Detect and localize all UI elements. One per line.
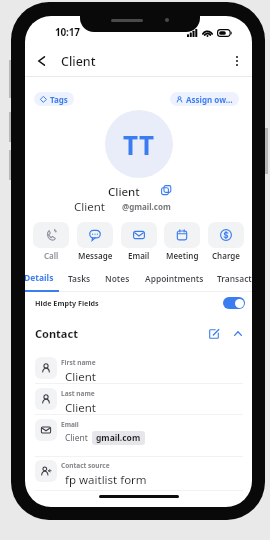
staticText: 10:17	[55, 25, 80, 39]
button[interactable]: First name	[25, 351, 252, 384]
staticText: TT	[123, 127, 155, 162]
button[interactable]: Charge	[208, 222, 244, 261]
staticText: fp waitlist form	[65, 472, 147, 488]
button[interactable]: Transacti	[217, 273, 252, 284]
button[interactable]: Last name	[25, 384, 252, 415]
staticText: Client	[65, 432, 88, 444]
staticText: @gmail.com	[122, 201, 171, 212]
staticText: Email	[128, 250, 150, 261]
staticText: Charge	[212, 250, 240, 261]
staticText: gmail.com	[96, 432, 141, 444]
button[interactable]: Tasks	[68, 273, 91, 284]
staticText: Message	[78, 250, 113, 261]
button[interactable]: Notes	[105, 273, 130, 284]
staticText: Appointments	[145, 273, 204, 284]
button[interactable]: Details	[25, 272, 54, 284]
button[interactable]: Message	[77, 222, 113, 261]
button[interactable]: Assign ow…	[170, 92, 239, 106]
button[interactable]: Meeting	[164, 222, 200, 261]
staticText: Meeting	[166, 250, 199, 261]
staticText: Client	[65, 369, 96, 385]
staticText: Client	[61, 53, 96, 70]
staticText: Client	[74, 199, 105, 215]
staticText: Contact	[35, 326, 78, 341]
staticText: Contact source	[61, 461, 110, 470]
staticText: Client	[65, 400, 96, 416]
button[interactable]: Collapse	[231, 327, 244, 340]
button[interactable]: Email	[25, 415, 252, 457]
staticText: First name	[61, 358, 96, 367]
staticText: Last name	[61, 389, 95, 398]
button[interactable]: Appointments	[145, 273, 204, 284]
button[interactable]: Tags	[34, 92, 74, 106]
staticText: Email	[61, 420, 79, 429]
button[interactable]: Hide empty fields	[223, 297, 245, 309]
button[interactable]: Call	[33, 222, 69, 261]
staticText: Tags	[50, 94, 68, 105]
staticText: Transacti	[217, 273, 252, 284]
button[interactable]: More options	[228, 52, 246, 70]
button[interactable]: Email	[121, 222, 157, 261]
staticText: Call	[44, 250, 59, 261]
staticText: Notes	[105, 273, 130, 284]
button[interactable]: Copy	[159, 183, 173, 197]
staticText: Client	[108, 184, 140, 200]
staticText: Tasks	[68, 273, 91, 284]
button[interactable]: Contact source	[25, 457, 252, 491]
button[interactable]: Back	[32, 52, 50, 70]
staticText: Hide Empty Fields	[35, 298, 99, 308]
button[interactable]: Edit	[207, 327, 220, 340]
staticText: Details	[25, 272, 54, 284]
staticText: Assign ow…	[186, 94, 233, 105]
